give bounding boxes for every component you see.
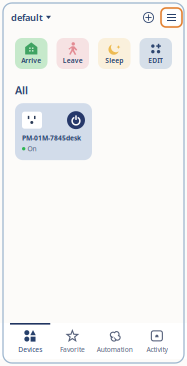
button[interactable]: Automation [93, 323, 136, 359]
staticText: Sleep [105, 56, 123, 65]
staticText: On [27, 144, 36, 153]
staticText: All [15, 83, 28, 97]
button[interactable]: EDIT [139, 38, 172, 69]
button[interactable]: PM-01M-7845desk [15, 103, 92, 160]
staticText: Devices [18, 345, 42, 354]
staticText: Leave [63, 56, 83, 65]
staticText: EDIT [148, 56, 163, 65]
button[interactable]: Leave [56, 38, 89, 69]
button[interactable]: Sleep [98, 38, 130, 69]
button[interactable]: default [11, 7, 51, 28]
button[interactable]: Favorite [51, 323, 93, 359]
staticText: Favorite [60, 345, 85, 354]
button[interactable]: Arrive [15, 38, 47, 69]
staticText: default [11, 11, 43, 24]
staticText: Arrive [21, 56, 41, 65]
staticText: Automation [97, 345, 133, 354]
button[interactable]: Add [139, 8, 158, 27]
staticText: Activity [146, 345, 167, 354]
button[interactable]: Activity [136, 323, 178, 359]
button[interactable]: Menu [158, 8, 182, 27]
button[interactable]: Devices [9, 323, 51, 359]
staticText: PM-01M-7845desk [22, 133, 81, 142]
